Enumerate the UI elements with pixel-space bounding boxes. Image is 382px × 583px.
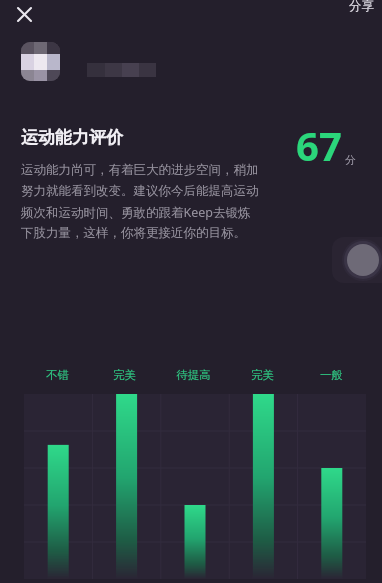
button[interactable]: Profile xyxy=(332,237,382,283)
staticText: 下肢力量，这样，你将更接近你的目标。 xyxy=(21,225,246,241)
staticText: 运动能力尚可，有着巨大的进步空间，稍加 xyxy=(21,162,259,178)
button[interactable]: 分享 xyxy=(341,0,382,18)
staticText: 完美 xyxy=(113,368,136,382)
staticText: 努力就能看到改变。建议你今后能提高运动 xyxy=(21,183,259,199)
staticText: 一般 xyxy=(320,368,343,382)
staticText: 不错 xyxy=(46,368,69,382)
staticText: 67 xyxy=(296,118,342,172)
staticText: 分享 xyxy=(349,0,374,14)
staticText: 运动能力评价 xyxy=(21,127,123,148)
staticText: 分 xyxy=(345,153,356,167)
staticText: 频次和运动时间、勇敢的跟着Keep去锻炼 xyxy=(21,204,251,221)
staticText: 完美 xyxy=(251,368,274,382)
button[interactable]: Close xyxy=(6,0,42,32)
staticText: 待提高 xyxy=(176,368,211,382)
